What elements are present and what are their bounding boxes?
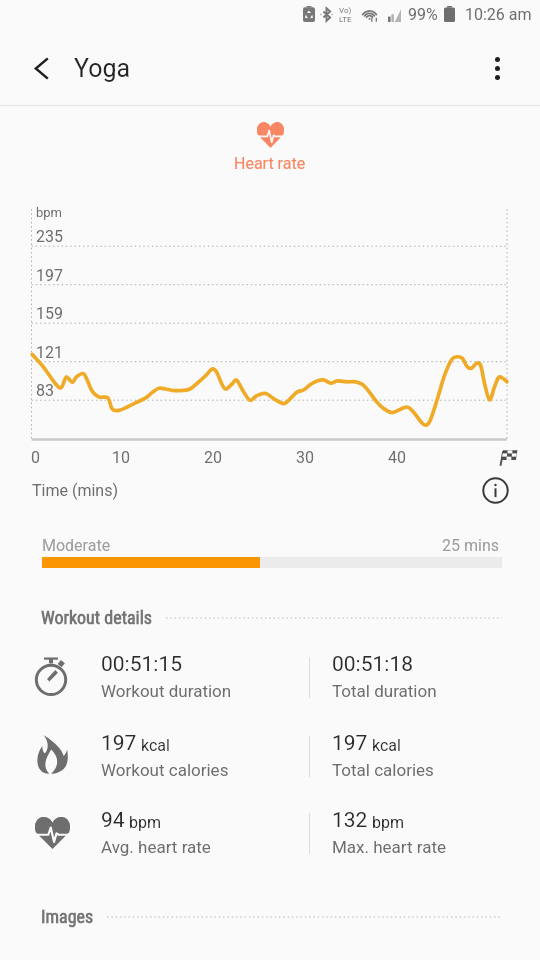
staticText: bpm — [372, 813, 404, 832]
staticText: 197 — [332, 731, 368, 756]
staticText: Images — [41, 906, 94, 927]
staticText: kcal — [141, 736, 170, 755]
staticText: 30 — [296, 448, 314, 467]
button[interactable]: More options — [469, 40, 525, 96]
staticText: Moderate — [42, 536, 111, 555]
staticText: 0 — [31, 448, 40, 467]
staticText: 132 — [332, 808, 368, 833]
staticText: 197 — [36, 266, 63, 285]
button[interactable]: 00:51:15 — [0, 638, 540, 716]
button[interactable]: Info — [475, 470, 516, 511]
staticText: 10 — [112, 448, 130, 467]
staticText: bpm — [129, 813, 161, 832]
staticText: 25 mins — [442, 536, 499, 555]
staticText: Avg. heart rate — [101, 837, 211, 857]
staticText: 10:26 am — [465, 5, 532, 24]
staticText: LTE — [339, 15, 352, 24]
button[interactable]: 94 — [0, 794, 540, 872]
staticText: 00:51:15 — [101, 652, 182, 677]
staticText: 40 — [388, 448, 406, 467]
staticText: Workout duration — [101, 681, 232, 701]
staticText: 121 — [36, 343, 63, 362]
button[interactable]: Back — [13, 40, 69, 96]
staticText: Total calories — [332, 760, 434, 780]
staticText: kcal — [372, 736, 401, 755]
staticText: Workout calories — [101, 760, 229, 780]
staticText: 99% — [408, 5, 438, 24]
staticText: Time (mins) — [32, 481, 118, 500]
staticText: 94 — [101, 808, 125, 833]
staticText: 159 — [36, 304, 63, 323]
staticText: Total duration — [332, 681, 437, 701]
button[interactable]: 197 — [0, 717, 540, 795]
staticText: 235 — [36, 227, 63, 246]
staticText: 00:51:18 — [332, 652, 413, 677]
staticText: 20 — [204, 448, 222, 467]
staticText: Vo) — [339, 6, 352, 15]
staticText: bpm — [36, 205, 62, 220]
staticText: Heart rate — [234, 154, 306, 173]
staticText: 83 — [36, 381, 54, 400]
staticText: Workout details — [41, 607, 153, 628]
staticText: Max. heart rate — [332, 837, 447, 857]
staticText: Yoga — [74, 54, 131, 83]
staticText: 197 — [101, 731, 137, 756]
